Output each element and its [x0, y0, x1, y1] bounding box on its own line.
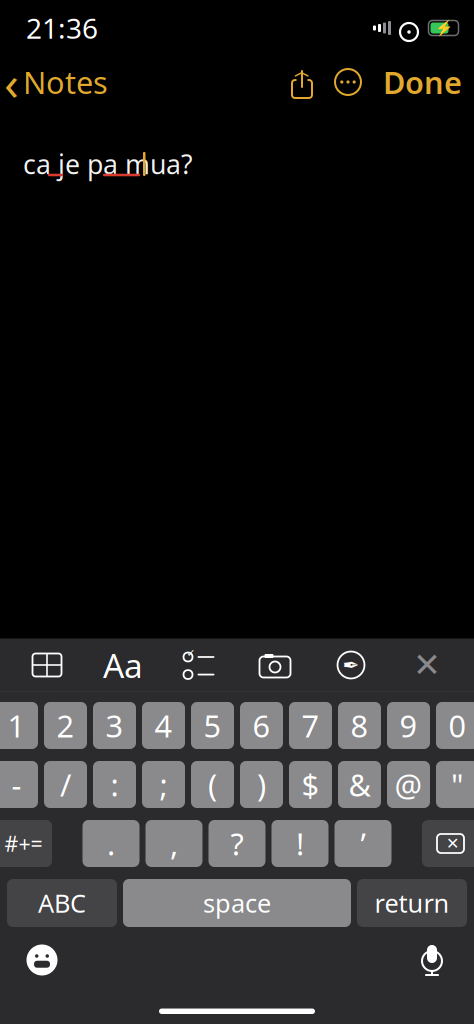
- button[interactable]: Delete: [422, 820, 474, 867]
- staticText: ABC: [38, 886, 86, 920]
- button[interactable]: ": [436, 761, 474, 808]
- button[interactable]: ): [240, 761, 283, 808]
- staticText: #+=: [4, 829, 42, 858]
- staticText: 2: [56, 705, 74, 746]
- button[interactable]: Markup: [324, 641, 378, 689]
- button[interactable]: Done: [371, 57, 474, 107]
- staticText: 0: [448, 705, 466, 746]
- staticText: ca je pa mua?: [23, 146, 193, 182]
- button[interactable]: 6: [240, 702, 283, 749]
- staticText: ": [451, 764, 464, 805]
- staticText: ?: [230, 823, 243, 864]
- button[interactable]: 1: [0, 702, 38, 749]
- staticText: 8: [350, 705, 368, 746]
- staticText: Notes: [23, 62, 108, 102]
- staticText: 4: [154, 705, 172, 746]
- button[interactable]: ‹: [0, 57, 118, 107]
- button[interactable]: Format text: [96, 641, 150, 689]
- button[interactable]: 7: [289, 702, 332, 749]
- staticText: 21:36: [26, 9, 98, 47]
- button[interactable]: 9: [387, 702, 430, 749]
- button[interactable]: 0: [436, 702, 474, 749]
- button[interactable]: Camera: [248, 641, 302, 689]
- button[interactable]: Table: [20, 641, 74, 689]
- staticText: 5: [203, 705, 221, 746]
- staticText: ’: [360, 823, 365, 864]
- button[interactable]: $: [289, 761, 332, 808]
- button[interactable]: 2: [44, 702, 87, 749]
- staticText: ✕: [446, 834, 459, 853]
- button[interactable]: 3: [93, 702, 136, 749]
- staticText: :: [110, 764, 118, 805]
- button[interactable]: /: [44, 761, 87, 808]
- staticText: 1: [7, 705, 25, 746]
- staticText: return: [374, 886, 449, 920]
- button[interactable]: #+=: [0, 820, 52, 867]
- button[interactable]: -: [0, 761, 38, 808]
- button[interactable]: Checklist: [172, 641, 226, 689]
- button[interactable]: ?: [208, 820, 265, 867]
- staticText: ⚡: [434, 20, 452, 36]
- button[interactable]: @: [387, 761, 430, 808]
- staticText: 6: [252, 705, 270, 746]
- button[interactable]: ,: [145, 820, 202, 867]
- button[interactable]: Hide keyboard: [400, 641, 454, 689]
- button[interactable]: (: [191, 761, 234, 808]
- button[interactable]: !: [271, 820, 328, 867]
- staticText: ✓: [186, 647, 195, 659]
- button[interactable]: Dictate: [404, 938, 460, 982]
- button[interactable]: .: [82, 820, 139, 867]
- button[interactable]: 8: [338, 702, 381, 749]
- staticText: -: [11, 764, 21, 805]
- button[interactable]: Emoji: [14, 938, 70, 982]
- staticText: ︿: [294, 62, 310, 82]
- staticText: 9: [399, 705, 417, 746]
- staticText: Done: [383, 62, 462, 102]
- button[interactable]: ’: [334, 820, 391, 867]
- staticText: !: [296, 823, 304, 864]
- button[interactable]: More: [325, 57, 371, 107]
- staticText: ): [257, 764, 266, 805]
- staticText: ✒: [342, 654, 359, 676]
- button[interactable]: ;: [142, 761, 185, 808]
- staticText: ;: [159, 764, 167, 805]
- button[interactable]: &: [338, 761, 381, 808]
- staticText: 7: [301, 705, 319, 746]
- button[interactable]: space: [123, 879, 351, 927]
- staticText: Aa: [103, 643, 143, 687]
- staticText: ‹: [4, 50, 19, 114]
- button[interactable]: return: [357, 879, 467, 927]
- staticText: ,: [170, 823, 178, 864]
- staticText: &: [348, 764, 370, 805]
- staticText: /: [60, 764, 71, 805]
- staticText: 3: [105, 705, 123, 746]
- staticText: $: [301, 764, 319, 805]
- staticText: (: [208, 764, 217, 805]
- staticText: space: [203, 886, 271, 920]
- button[interactable]: Share: [279, 57, 325, 107]
- staticText: @: [394, 764, 422, 805]
- button[interactable]: 4: [142, 702, 185, 749]
- staticText: ✕: [413, 646, 441, 684]
- button[interactable]: 5: [191, 702, 234, 749]
- staticText: .: [107, 823, 115, 864]
- button[interactable]: ABC: [7, 879, 117, 927]
- button[interactable]: :: [93, 761, 136, 808]
